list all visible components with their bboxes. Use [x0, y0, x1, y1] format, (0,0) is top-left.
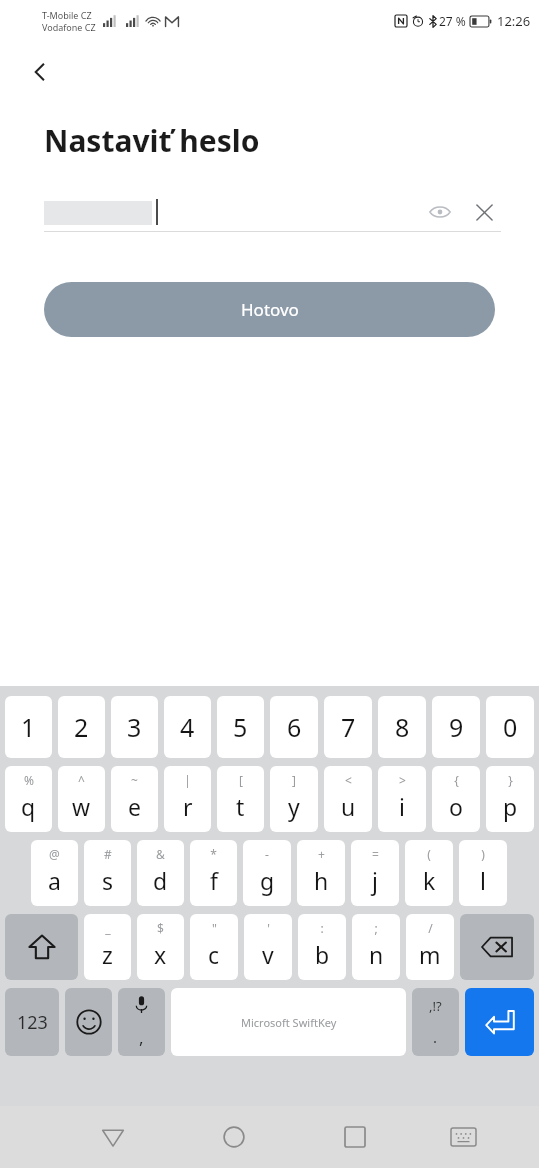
- button[interactable]: Clear: [467, 195, 501, 229]
- button[interactable]: ]: [270, 766, 318, 832]
- button[interactable]: {: [432, 766, 480, 832]
- button[interactable]: #: [84, 840, 131, 906]
- staticText: Vodafone CZ: [42, 21, 96, 33]
- staticText: 4: [180, 710, 195, 744]
- staticText: w: [72, 791, 91, 822]
- staticText: z: [102, 939, 113, 970]
- staticText: ^: [78, 772, 85, 788]
- button[interactable]: Shift: [5, 914, 78, 980]
- button[interactable]: Hide keyboard: [434, 1106, 492, 1168]
- button[interactable]: @: [31, 840, 78, 906]
- button[interactable]: Home: [205, 1106, 263, 1168]
- staticText: l: [480, 865, 486, 896]
- button[interactable]: Back: [84, 1106, 142, 1168]
- staticText: -: [265, 846, 269, 862]
- staticText: q: [21, 791, 36, 822]
- button[interactable]: ): [459, 840, 507, 906]
- staticText: o: [449, 791, 463, 822]
- staticText: i: [399, 791, 405, 822]
- staticText: j: [372, 865, 378, 896]
- staticText: 27 %: [439, 13, 466, 29]
- button[interactable]: _: [84, 914, 131, 980]
- staticText: Microsoft SwiftKey: [241, 1015, 337, 1030]
- button[interactable]: 7: [324, 696, 372, 758]
- button[interactable]: +: [297, 840, 345, 906]
- button[interactable]: Voice input: [118, 988, 165, 1056]
- staticText: .: [433, 1027, 438, 1047]
- button[interactable]: &: [137, 840, 184, 906]
- staticText: c: [208, 939, 220, 970]
- staticText: :: [320, 920, 324, 936]
- staticText: k: [423, 865, 436, 896]
- staticText: <: [345, 772, 352, 788]
- button[interactable]: (: [405, 840, 453, 906]
- staticText: (: [427, 846, 431, 862]
- staticText: Nastaviť heslo: [44, 120, 260, 161]
- button[interactable]: 8: [378, 696, 426, 758]
- button[interactable]: 9: [432, 696, 480, 758]
- staticText: 8: [395, 710, 410, 744]
- staticText: @: [49, 846, 60, 862]
- button[interactable]: Recents: [326, 1106, 384, 1168]
- button[interactable]: ;: [352, 914, 400, 980]
- button[interactable]: Enter: [465, 988, 534, 1056]
- button[interactable]: 6: [270, 696, 318, 758]
- button[interactable]: ': [244, 914, 292, 980]
- button[interactable]: ": [190, 914, 238, 980]
- button[interactable]: >: [378, 766, 426, 832]
- button[interactable]: $: [137, 914, 184, 980]
- staticText: *: [210, 846, 217, 862]
- button[interactable]: 123: [5, 988, 59, 1056]
- button[interactable]: 0: [486, 696, 534, 758]
- staticText: ": [212, 920, 217, 936]
- staticText: /: [428, 920, 433, 936]
- button[interactable]: :: [298, 914, 346, 980]
- staticText: T-Mobile CZ: [42, 9, 92, 21]
- staticText: h: [314, 865, 329, 896]
- button[interactable]: %: [5, 766, 52, 832]
- button[interactable]: Backspace: [460, 914, 534, 980]
- staticText: 0: [503, 710, 518, 744]
- button[interactable]: 1: [5, 696, 52, 758]
- button[interactable]: Back: [18, 50, 62, 94]
- button[interactable]: <: [324, 766, 372, 832]
- button[interactable]: 4: [164, 696, 211, 758]
- staticText: _: [105, 920, 111, 936]
- button[interactable]: 3: [111, 696, 158, 758]
- staticText: +: [318, 846, 325, 862]
- staticText: $: [157, 920, 164, 936]
- staticText: [: [239, 772, 243, 788]
- button[interactable]: Space: [171, 988, 406, 1056]
- staticText: n: [369, 939, 384, 970]
- staticText: ,!?: [429, 997, 442, 1015]
- staticText: t: [236, 791, 245, 822]
- button[interactable]: ,!?: [412, 988, 459, 1056]
- button[interactable]: =: [351, 840, 399, 906]
- staticText: 3: [127, 710, 142, 744]
- staticText: 9: [449, 710, 464, 744]
- button[interactable]: Emoji: [65, 988, 112, 1056]
- staticText: ): [481, 846, 485, 862]
- button[interactable]: [: [217, 766, 264, 832]
- staticText: a: [48, 865, 61, 896]
- staticText: |: [184, 772, 191, 788]
- staticText: ~: [131, 772, 138, 788]
- button[interactable]: 2: [58, 696, 105, 758]
- staticText: {: [454, 772, 459, 788]
- button[interactable]: Hotovo: [44, 282, 495, 337]
- staticText: Hotovo: [241, 298, 299, 321]
- button[interactable]: ^: [58, 766, 105, 832]
- staticText: 5: [233, 710, 248, 744]
- button[interactable]: 5: [217, 696, 264, 758]
- staticText: #: [104, 846, 112, 862]
- button[interactable]: |: [164, 766, 211, 832]
- staticText: }: [508, 772, 513, 788]
- button[interactable]: Show password: [422, 194, 458, 230]
- button[interactable]: -: [243, 840, 291, 906]
- button[interactable]: /: [406, 914, 454, 980]
- button[interactable]: }: [486, 766, 534, 832]
- staticText: x: [154, 939, 167, 970]
- button[interactable]: *: [190, 840, 237, 906]
- staticText: >: [399, 772, 406, 788]
- button[interactable]: ~: [111, 766, 158, 832]
